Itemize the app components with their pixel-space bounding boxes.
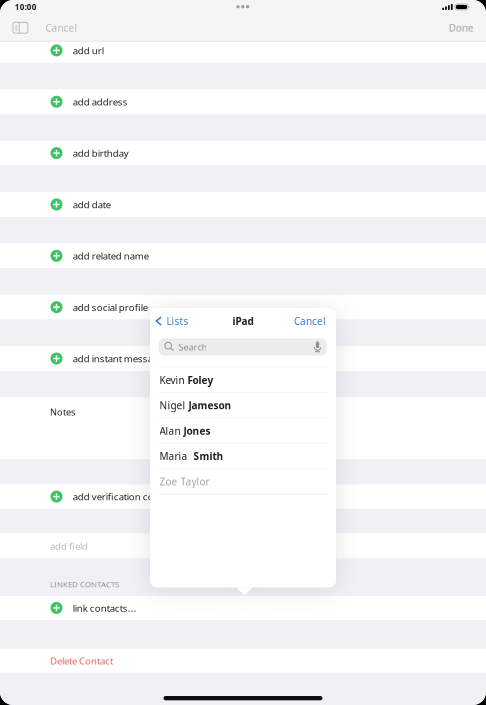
staticText: Kevin bbox=[160, 373, 185, 387]
button[interactable]: Cancel bbox=[294, 312, 326, 330]
staticText: add social profile bbox=[73, 301, 148, 314]
button[interactable]: Kevin bbox=[150, 367, 336, 393]
button[interactable]: add date bbox=[0, 192, 486, 217]
staticText: Nigel bbox=[160, 399, 186, 412]
button[interactable]: add url bbox=[0, 38, 486, 63]
staticText: Maria bbox=[160, 449, 188, 463]
button[interactable]: add address bbox=[0, 89, 486, 114]
staticText: Notes bbox=[50, 406, 75, 418]
button[interactable]: Delete Contact bbox=[0, 648, 486, 673]
staticText: Alan bbox=[160, 424, 181, 438]
staticText: add instant message bbox=[73, 352, 164, 365]
button[interactable]: add field bbox=[0, 533, 486, 559]
staticText: add related name bbox=[73, 249, 149, 262]
staticText bbox=[186, 399, 189, 412]
button[interactable]: link contacts... bbox=[0, 596, 486, 620]
staticText: add birthday bbox=[73, 147, 129, 160]
staticText: add url bbox=[73, 44, 104, 57]
button[interactable]: Alan bbox=[150, 418, 336, 443]
button[interactable]: Cancel bbox=[35, 15, 86, 41]
button[interactable]: Notes bbox=[0, 397, 486, 459]
staticText: Jameson bbox=[189, 399, 232, 412]
button[interactable]: add social profile bbox=[0, 295, 486, 320]
button[interactable]: Show sidebar bbox=[13, 15, 35, 41]
staticText: add date bbox=[73, 198, 111, 211]
staticText: Delete Contact bbox=[50, 654, 113, 667]
button[interactable]: add verification code bbox=[0, 484, 486, 509]
staticText: LINKED CONTACTS bbox=[50, 579, 119, 589]
staticText: Smith bbox=[191, 449, 224, 463]
button[interactable]: Done bbox=[446, 15, 477, 41]
button[interactable]: add instant message bbox=[0, 346, 486, 371]
staticText: link contacts... bbox=[73, 601, 137, 614]
staticText: 10:00 bbox=[15, 2, 37, 12]
staticText: add verification code bbox=[73, 490, 165, 503]
button[interactable]: Zoe bbox=[150, 469, 336, 494]
staticText: Lists bbox=[166, 314, 188, 328]
staticText: Foley bbox=[188, 373, 214, 387]
staticText: add field bbox=[50, 539, 88, 552]
staticText: Done bbox=[449, 21, 474, 34]
staticText bbox=[181, 424, 184, 438]
staticText: Zoe bbox=[160, 475, 178, 488]
button[interactable]: Lists bbox=[155, 312, 188, 330]
staticText: Search bbox=[178, 341, 207, 353]
button[interactable]: add birthday bbox=[0, 141, 486, 166]
staticText: Jones bbox=[184, 424, 211, 438]
button[interactable]: Nigel bbox=[150, 393, 336, 418]
staticText: Taylor bbox=[181, 475, 210, 488]
button[interactable]: add related name bbox=[0, 243, 486, 268]
staticText: Cancel bbox=[294, 314, 326, 328]
staticText: add address bbox=[73, 95, 128, 108]
staticText: Cancel bbox=[45, 21, 77, 34]
button[interactable]: Maria bbox=[150, 443, 336, 469]
staticText: iPad bbox=[232, 314, 253, 328]
